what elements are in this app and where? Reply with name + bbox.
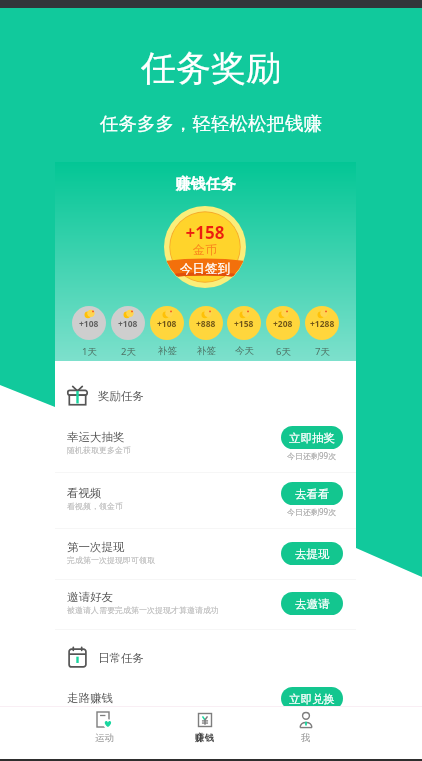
button[interactable]: +108 xyxy=(150,306,184,340)
button[interactable]: 赚钱 xyxy=(154,707,255,748)
button[interactable]: 我 xyxy=(255,707,356,748)
staticText: 2天 xyxy=(121,345,136,358)
button[interactable]: 立即抽奖 xyxy=(281,426,343,449)
button[interactable]: 去看看 xyxy=(281,482,343,505)
staticText: +108 xyxy=(118,318,138,330)
staticText: +208 xyxy=(273,318,293,330)
staticText: 补签 xyxy=(158,345,177,357)
staticText: 我 xyxy=(301,732,311,744)
button[interactable]: 邀请好友 xyxy=(55,580,356,629)
staticText: 去提现 xyxy=(295,547,330,561)
staticText: 完成第一次提现即可领取 xyxy=(67,555,155,565)
staticText: 今天 xyxy=(235,345,254,357)
button[interactable]: +1288 xyxy=(305,306,339,340)
staticText: 7天 xyxy=(315,345,330,358)
other: 运动 xyxy=(95,711,113,729)
staticText: 随机获取更多金币 xyxy=(67,445,131,455)
staticText: 幸运大抽奖 xyxy=(67,430,125,444)
button[interactable]: 看视频 xyxy=(55,473,356,528)
button[interactable]: +108 xyxy=(72,306,106,340)
button[interactable]: 立即兑换 xyxy=(281,687,343,710)
staticText: 今日还剩99次 xyxy=(287,506,337,517)
staticText: 立即兑换 xyxy=(289,692,335,706)
staticText: +108 xyxy=(157,318,177,330)
button[interactable]: +158 xyxy=(227,306,261,340)
staticText: +158 xyxy=(164,221,246,244)
button[interactable]: +888 xyxy=(189,306,223,340)
staticText: 第一次提现 xyxy=(67,540,125,554)
staticText: 奖励任务 xyxy=(98,389,144,403)
button[interactable]: 去提现 xyxy=(281,542,343,565)
staticText: 6天 xyxy=(276,345,291,358)
staticText: 任务多多，轻轻松松把钱赚 xyxy=(0,112,422,135)
staticText: 任务奖励 xyxy=(0,46,422,90)
staticText: 去邀请 xyxy=(295,597,330,611)
button[interactable]: +208 xyxy=(266,306,300,340)
staticText: 去看看 xyxy=(295,487,330,501)
staticText: 走路赚钱 xyxy=(67,691,113,705)
button[interactable]: 去邀请 xyxy=(281,592,343,615)
staticText: 看视频，领金币 xyxy=(67,501,123,511)
button[interactable]: +108 xyxy=(111,306,145,340)
staticText: 运动 xyxy=(95,732,114,744)
staticText: 立即抽奖 xyxy=(289,431,335,445)
staticText: 日常任务 xyxy=(98,651,144,665)
other: 赚钱 xyxy=(196,711,214,729)
staticText: 赚钱任务 xyxy=(55,175,356,194)
staticText: 看视频 xyxy=(67,486,102,500)
button[interactable]: 第一次提现 xyxy=(55,529,356,579)
button[interactable]: 运动 xyxy=(54,707,154,748)
staticText: 赚钱 xyxy=(195,732,214,744)
staticText: +1288 xyxy=(310,318,335,330)
other: 我 xyxy=(297,711,315,729)
staticText: 补签 xyxy=(197,345,216,357)
staticText: +108 xyxy=(79,318,99,330)
staticText: 金币 xyxy=(164,242,246,257)
staticText: 邀请好友 xyxy=(67,590,113,604)
staticText: 每日行走步数可兑换金币 xyxy=(67,706,155,716)
staticText: +158 xyxy=(234,318,254,330)
staticText: +888 xyxy=(196,318,216,330)
staticText: 今日还剩99次 xyxy=(287,450,337,461)
button[interactable]: 幸运大抽奖 xyxy=(55,416,356,472)
button[interactable]: 走路赚钱 xyxy=(55,677,356,733)
staticText: 今日签到 xyxy=(164,261,246,277)
staticText: 1天 xyxy=(82,345,97,358)
staticText: 今日还剩99次 xyxy=(287,711,337,722)
staticText: 被邀请人需要完成第一次提现才算邀请成功 xyxy=(67,605,219,615)
